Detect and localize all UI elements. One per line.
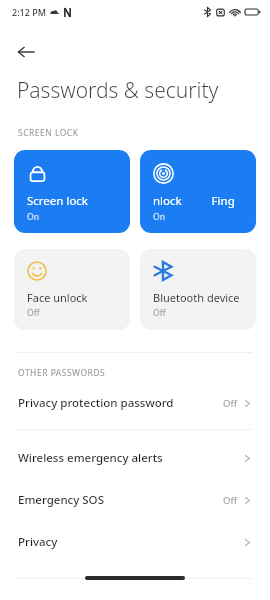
button[interactable]: Emergency SOS bbox=[0, 486, 270, 514]
button[interactable]: Privacy bbox=[0, 528, 270, 556]
staticText: 2:12 PM bbox=[12, 6, 46, 18]
staticText: Wireless emergency alerts bbox=[18, 450, 243, 466]
staticText: SCREEN LOCK bbox=[18, 127, 79, 139]
button[interactable]: Face unlock bbox=[14, 249, 130, 330]
staticText: On bbox=[153, 211, 165, 223]
staticText: Screen lock bbox=[27, 193, 89, 209]
staticText: Emergency SOS bbox=[18, 492, 223, 508]
staticText: nlock Fing bbox=[153, 193, 235, 209]
staticText: Privacy bbox=[18, 534, 243, 550]
button[interactable]: nlock Fing bbox=[140, 150, 256, 233]
staticText: Face unlock bbox=[27, 290, 88, 305]
button[interactable]: Privacy protection password bbox=[0, 389, 270, 417]
button[interactable]: Back bbox=[10, 36, 42, 68]
staticText: Off bbox=[153, 307, 166, 319]
staticText: Off bbox=[223, 494, 237, 507]
staticText: Bluetooth device bbox=[153, 290, 240, 305]
staticText: Off bbox=[223, 397, 237, 410]
button[interactable]: Screen lock bbox=[14, 150, 130, 233]
button[interactable]: Wireless emergency alerts bbox=[0, 444, 270, 472]
button[interactable]: Bluetooth device bbox=[140, 249, 256, 330]
staticText: Off bbox=[27, 307, 40, 319]
staticText: On bbox=[27, 211, 39, 223]
staticText: Privacy protection password bbox=[18, 395, 223, 411]
staticText: OTHER PASSWORDS bbox=[18, 367, 106, 379]
staticText: Passwords & security bbox=[17, 76, 219, 105]
